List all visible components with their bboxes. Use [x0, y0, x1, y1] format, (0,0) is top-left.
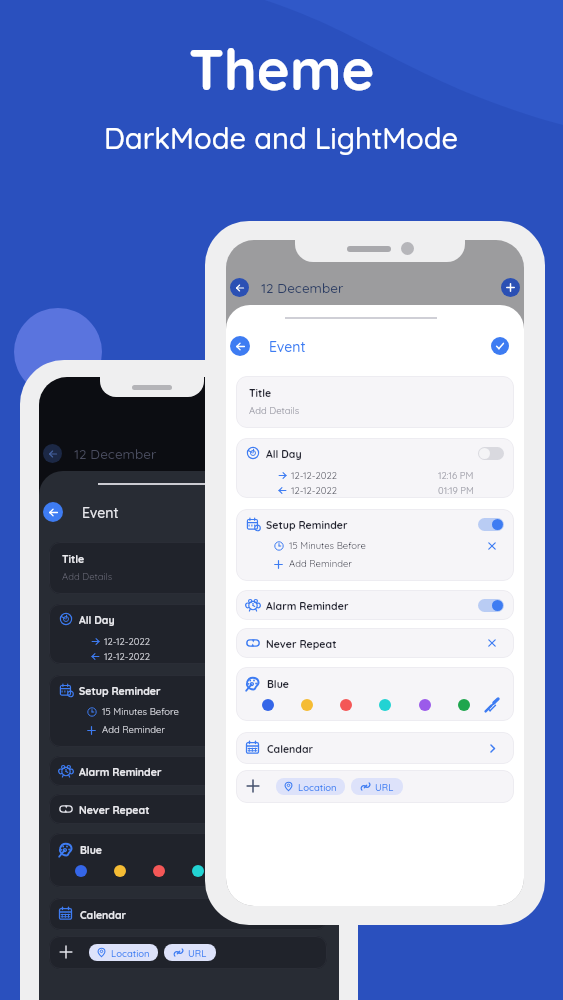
staticText: Calendar — [80, 908, 127, 921]
staticText: 15 Minutes Before — [289, 539, 366, 551]
staticText: Add Reminder — [102, 723, 165, 735]
staticText: All Day — [266, 447, 302, 460]
button[interactable]: Colour — [340, 699, 352, 711]
staticText: Add Details — [249, 404, 300, 416]
button[interactable]: URL — [351, 778, 403, 795]
button[interactable]: Colour — [75, 865, 87, 877]
button[interactable]: Back — [230, 336, 250, 356]
button[interactable]: Alarm Reminder — [236, 590, 514, 620]
button[interactable]: All Day — [49, 604, 327, 664]
staticText: Never Repeat — [79, 803, 150, 816]
staticText: Event — [269, 338, 306, 356]
staticText: DarkMode and LightMode — [104, 120, 459, 156]
button[interactable]: Custom colour — [484, 697, 500, 713]
button[interactable]: Never Repeat — [236, 628, 514, 658]
button[interactable]: Add — [501, 278, 520, 297]
button[interactable]: Remove — [300, 707, 310, 717]
staticText: Calendar — [267, 742, 314, 755]
button[interactable]: Back — [43, 502, 63, 522]
staticText: Location — [111, 947, 150, 959]
staticText: Blue — [80, 843, 102, 856]
button[interactable]: Colour — [262, 699, 274, 711]
staticText: 12-12-2022 — [104, 650, 150, 662]
staticText: 12-12-2022 — [291, 469, 337, 481]
button[interactable]: Location — [89, 944, 158, 961]
staticText: 12 December — [261, 279, 344, 296]
button[interactable]: Add — [236, 770, 514, 803]
button[interactable]: Add — [59, 945, 73, 959]
staticText: 12-12-2022 — [291, 484, 337, 496]
staticText: Add Details — [62, 570, 113, 582]
staticText: Setup Reminder — [266, 518, 348, 531]
staticText: Title — [62, 552, 85, 565]
staticText: 01:19 PM — [438, 484, 474, 496]
staticText: 12-12-2022 — [104, 635, 150, 647]
button[interactable]: Toggle — [478, 599, 504, 612]
staticText: Event — [82, 504, 119, 522]
staticText: Theme — [189, 34, 375, 104]
button[interactable]: Toggle — [291, 765, 317, 778]
button[interactable]: Back — [43, 444, 62, 463]
button[interactable]: Colour — [153, 865, 165, 877]
button[interactable]: Colour — [379, 699, 391, 711]
button[interactable]: URL — [164, 944, 216, 961]
button[interactable]: Remove — [487, 541, 497, 551]
button[interactable]: Blue — [236, 667, 514, 721]
button[interactable]: Colour — [419, 699, 431, 711]
staticText: 12:16 PM — [251, 635, 287, 647]
staticText: URL — [375, 781, 394, 793]
button[interactable]: All Day — [236, 438, 514, 498]
button[interactable]: Title — [49, 542, 327, 594]
button[interactable]: Location — [276, 778, 345, 795]
button[interactable]: Blue — [49, 833, 327, 887]
button[interactable]: Calendar — [49, 898, 327, 930]
button[interactable]: Add — [49, 936, 327, 969]
button[interactable]: Alarm Reminder — [49, 756, 327, 786]
staticText: 12:16 PM — [438, 469, 474, 481]
staticText: All Day — [79, 613, 115, 626]
button[interactable]: Colour — [458, 699, 470, 711]
button[interactable]: Back — [230, 278, 249, 297]
button[interactable]: Done — [304, 503, 322, 521]
staticText: 01:19 PM — [251, 650, 287, 662]
button[interactable]: Add — [246, 779, 260, 793]
button[interactable]: Colour — [301, 699, 313, 711]
staticText: Add Reminder — [289, 557, 352, 569]
button[interactable]: Toggle — [291, 613, 317, 626]
button[interactable]: Done — [491, 337, 509, 355]
staticText: Never Repeat — [266, 637, 337, 650]
staticText: Location — [298, 781, 337, 793]
button[interactable]: Calendar — [236, 732, 514, 764]
staticText: 12 December — [74, 445, 157, 462]
button[interactable]: Remove — [487, 638, 497, 648]
button[interactable]: Colour — [114, 865, 126, 877]
staticText: Blue — [267, 677, 289, 690]
button[interactable]: Colour — [192, 865, 204, 877]
button[interactable]: Setup Reminder — [49, 675, 327, 747]
staticText: Alarm Reminder — [266, 599, 349, 612]
button[interactable]: Title — [236, 376, 514, 428]
button[interactable]: Setup Reminder — [236, 509, 514, 581]
staticText: Alarm Reminder — [79, 765, 162, 778]
staticText: URL — [188, 947, 207, 959]
button[interactable]: Toggle — [478, 518, 504, 531]
button[interactable]: Toggle — [478, 447, 504, 460]
staticText: 15 Minutes Before — [102, 705, 179, 717]
button[interactable]: Never Repeat — [49, 794, 327, 824]
staticText: Title — [249, 386, 272, 399]
staticText: Setup Reminder — [79, 684, 161, 697]
